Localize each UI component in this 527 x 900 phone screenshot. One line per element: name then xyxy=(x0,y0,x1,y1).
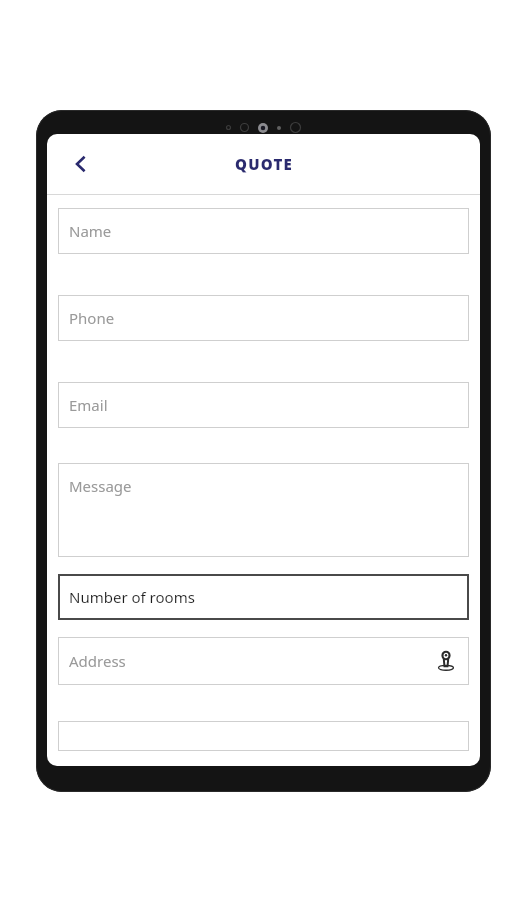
button[interactable]: Email xyxy=(58,382,469,428)
button[interactable]: Use current location xyxy=(431,646,461,676)
button[interactable]: Number of rooms xyxy=(58,574,469,620)
staticText: Email xyxy=(69,395,108,415)
button[interactable] xyxy=(58,721,469,751)
staticText: QUOTE xyxy=(235,154,293,174)
staticText: Message xyxy=(69,476,132,496)
button[interactable]: Address xyxy=(58,637,469,685)
staticText: Name xyxy=(69,221,112,241)
staticText: Phone xyxy=(69,308,115,328)
staticText: Address xyxy=(69,651,126,671)
button[interactable]: Back xyxy=(59,142,103,186)
staticText: Number of rooms xyxy=(69,587,195,607)
button[interactable]: Name xyxy=(58,208,469,254)
button[interactable]: Phone xyxy=(58,295,469,341)
button[interactable]: Message xyxy=(58,463,469,557)
